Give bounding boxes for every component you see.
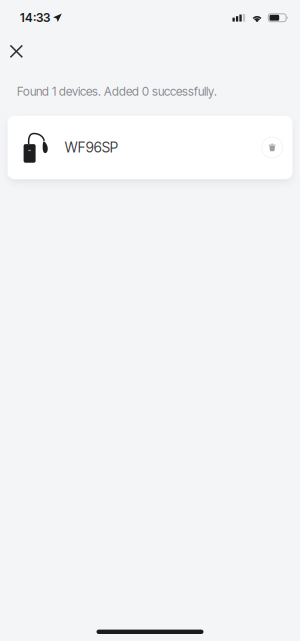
- staticText: WF96SP: [65, 139, 118, 156]
- button[interactable]: WF96SP: [8, 116, 292, 179]
- staticText: 14:33: [20, 10, 50, 25]
- button[interactable]: Close: [0, 35, 32, 67]
- staticText: Found 1 devices. Added 0 successfully.: [17, 84, 217, 99]
